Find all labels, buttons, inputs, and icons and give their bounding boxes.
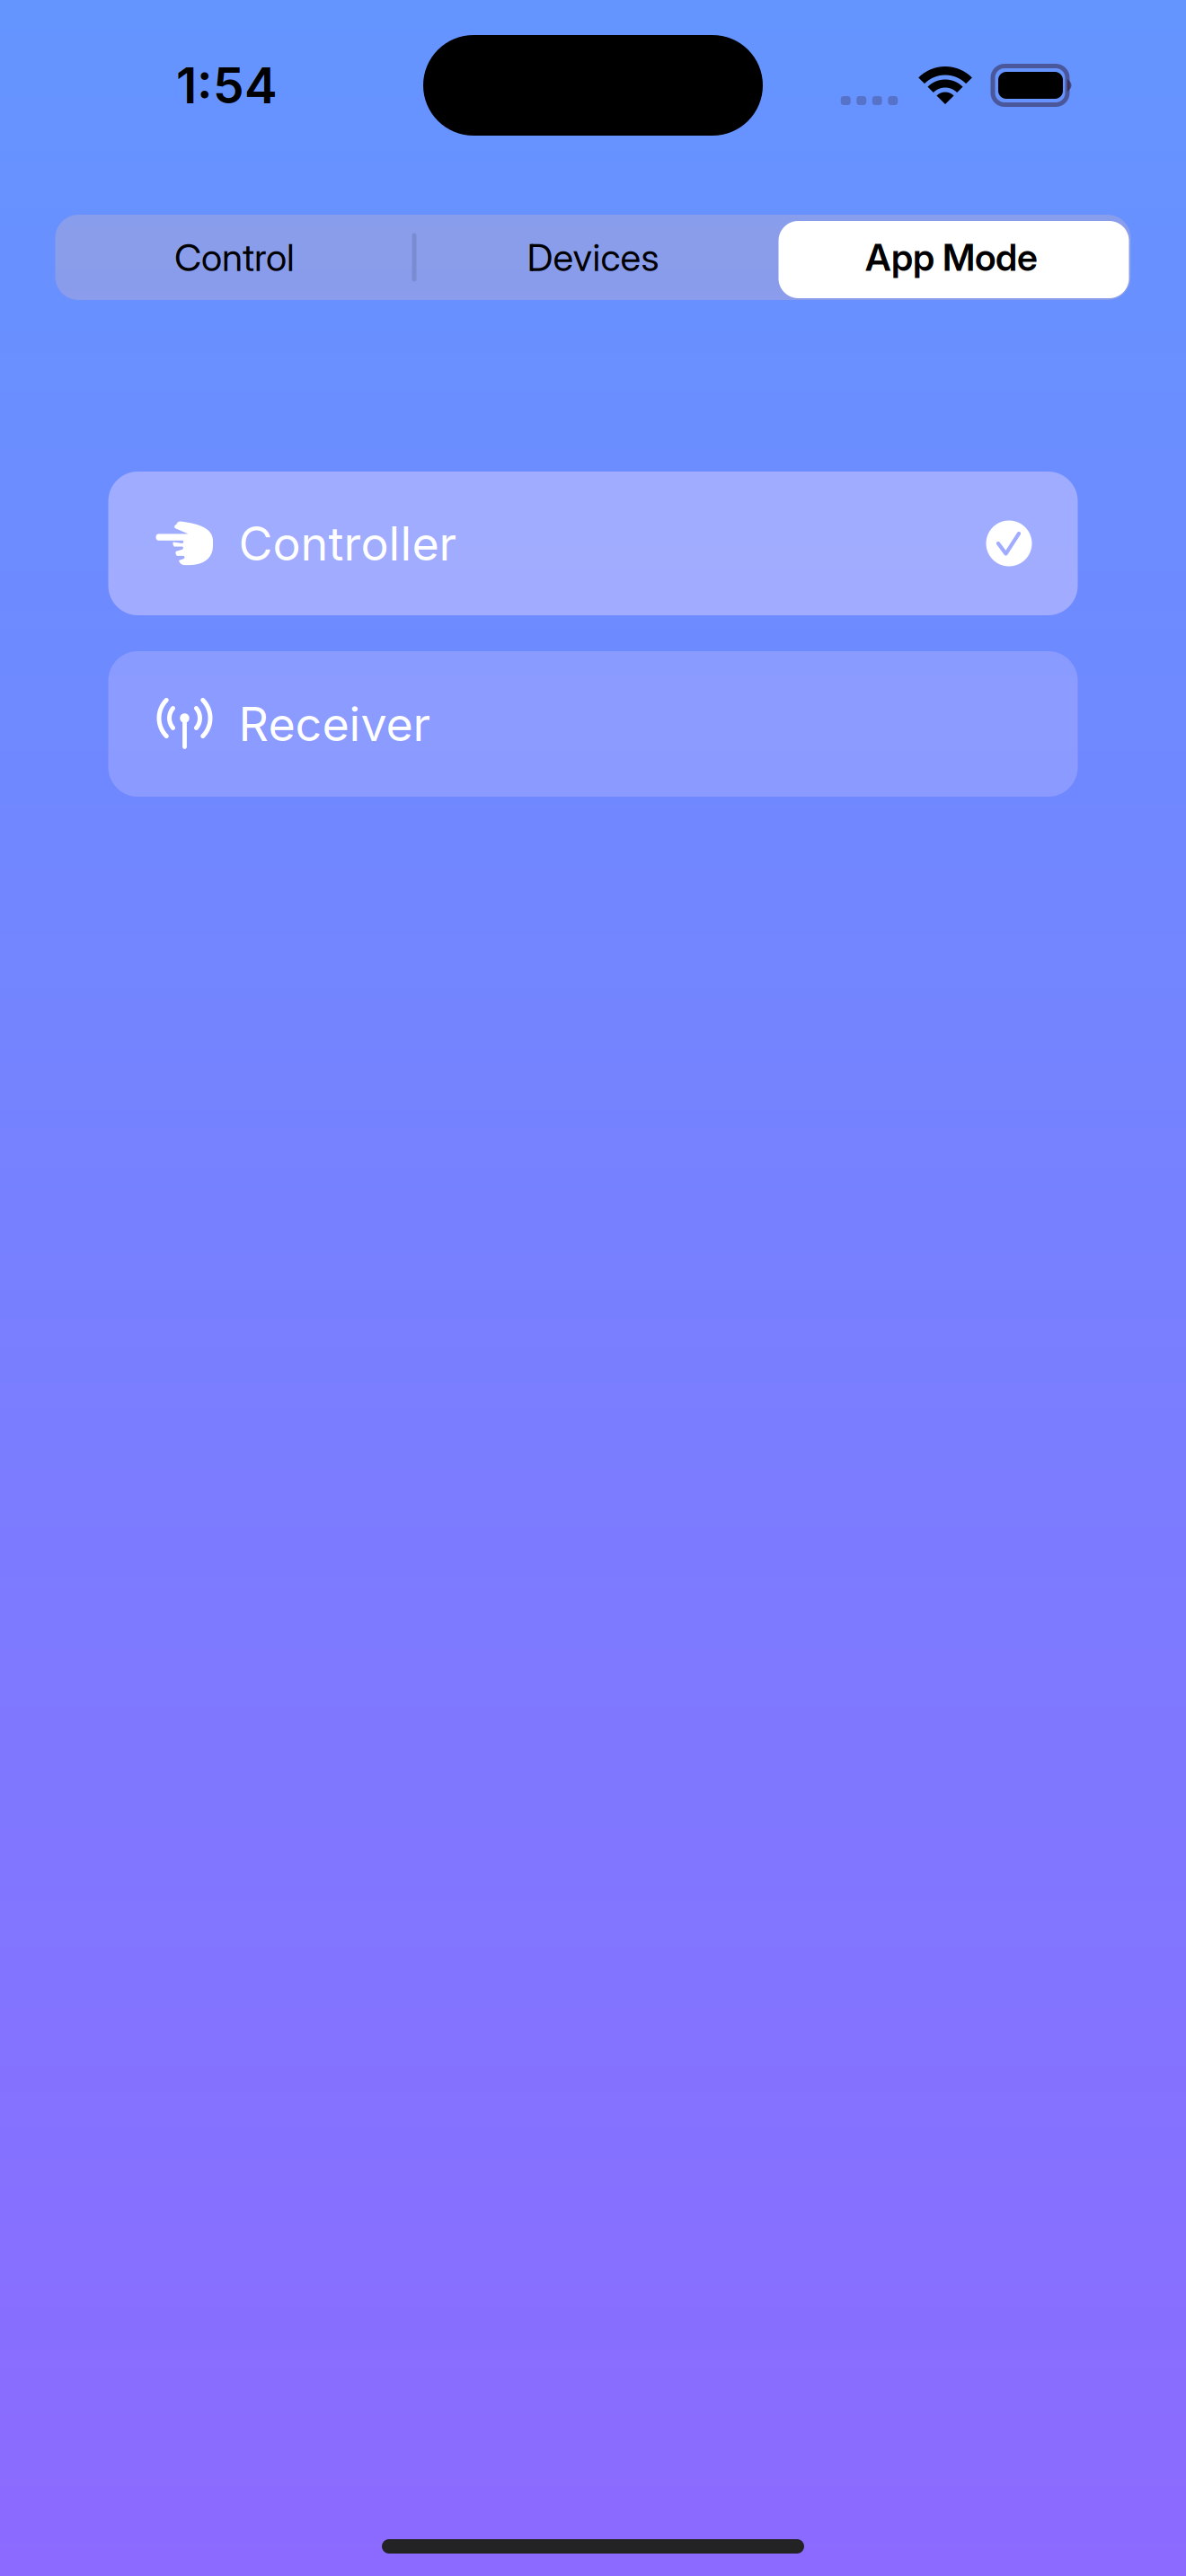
- staticText: Devices: [527, 235, 659, 280]
- button[interactable]: Control: [55, 215, 414, 300]
- button[interactable]: Controller: [108, 472, 1078, 615]
- button[interactable]: Devices: [414, 215, 772, 300]
- staticText: App Mode: [865, 235, 1038, 280]
- staticText: Receiver: [239, 696, 431, 752]
- staticText: 1:54: [176, 55, 278, 115]
- staticText: Control: [174, 235, 295, 280]
- button[interactable]: App Mode: [772, 215, 1131, 300]
- button[interactable]: Receiver: [108, 651, 1078, 797]
- staticText: Controller: [239, 515, 457, 572]
